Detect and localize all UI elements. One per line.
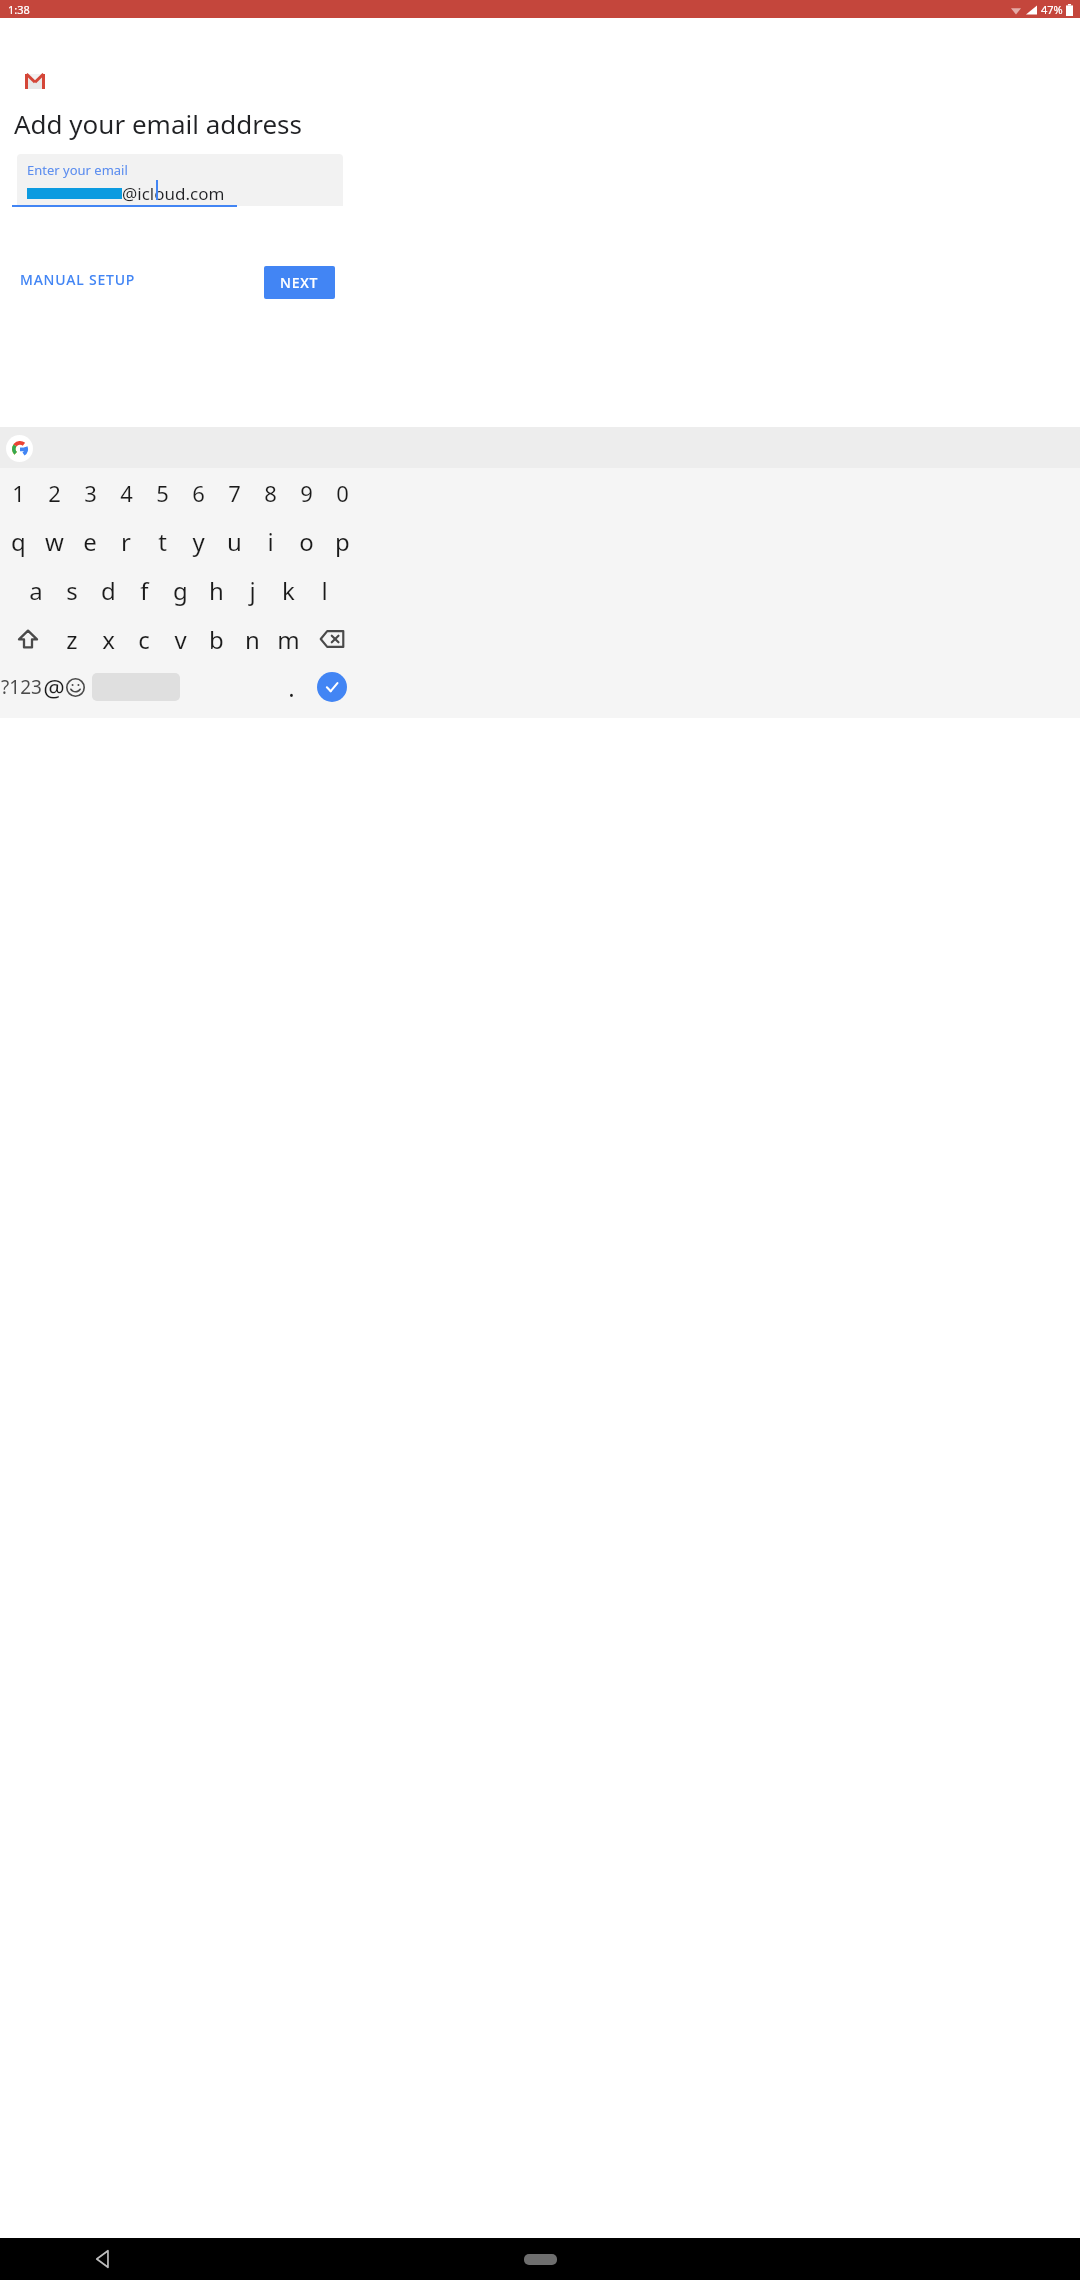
staticText: 3 bbox=[84, 478, 97, 508]
button[interactable]: p bbox=[292, 481, 392, 601]
staticText: g bbox=[173, 574, 188, 607]
button[interactable]: q bbox=[0, 481, 68, 601]
button[interactable]: NEXT bbox=[264, 266, 335, 299]
staticText: h bbox=[209, 574, 224, 607]
staticText: 4 bbox=[120, 478, 133, 508]
staticText: f bbox=[140, 574, 149, 607]
staticText: l bbox=[321, 574, 328, 607]
button[interactable]: f bbox=[94, 530, 194, 650]
button[interactable]: z bbox=[22, 579, 122, 699]
button[interactable]: a bbox=[0, 530, 86, 650]
staticText: i bbox=[267, 525, 274, 558]
button[interactable]: e bbox=[40, 481, 140, 601]
staticText: r bbox=[121, 525, 131, 558]
staticText: 6 bbox=[192, 478, 205, 508]
button[interactable]: r bbox=[76, 481, 176, 601]
button[interactable]: t bbox=[112, 481, 212, 601]
staticText: 1 bbox=[12, 478, 25, 508]
staticText: 8 bbox=[264, 478, 277, 508]
button[interactable]: Home bbox=[520, 2241, 560, 2277]
button[interactable]: u bbox=[184, 481, 284, 601]
button[interactable]: k bbox=[238, 530, 338, 650]
button[interactable]: s bbox=[22, 530, 122, 650]
staticText: c bbox=[138, 623, 150, 656]
staticText: z bbox=[66, 623, 78, 656]
button[interactable]: 7 bbox=[184, 433, 284, 553]
staticText: @icloud.com bbox=[122, 182, 225, 205]
staticText: 0 bbox=[336, 478, 349, 508]
button[interactable]: 6 bbox=[148, 433, 248, 553]
button[interactable]: i bbox=[220, 481, 320, 601]
staticText: q bbox=[11, 525, 26, 558]
staticText: o bbox=[299, 525, 314, 558]
staticText: x bbox=[102, 623, 115, 656]
button[interactable]: n bbox=[202, 579, 302, 699]
button[interactable]: 8 bbox=[220, 433, 320, 553]
button[interactable]: o bbox=[256, 481, 356, 601]
staticText: MANUAL SETUP bbox=[20, 270, 136, 289]
button[interactable]: Shift bbox=[10, 619, 46, 659]
button[interactable]: @ bbox=[4, 627, 104, 747]
button[interactable]: b bbox=[166, 579, 266, 699]
button[interactable]: v bbox=[130, 579, 230, 699]
staticText: u bbox=[227, 525, 242, 558]
button[interactable]: 3 bbox=[40, 433, 140, 553]
button[interactable]: l bbox=[274, 530, 374, 650]
button[interactable]: . bbox=[241, 627, 341, 747]
button[interactable]: MANUAL SETUP bbox=[20, 270, 136, 289]
staticText: @ bbox=[43, 671, 65, 704]
button[interactable]: 1 bbox=[0, 433, 68, 553]
button[interactable]: Google bbox=[6, 435, 33, 462]
button[interactable]: Backspace bbox=[312, 619, 352, 659]
button[interactable]: g bbox=[130, 530, 230, 650]
button[interactable]: Symbols bbox=[0, 627, 71, 747]
button[interactable]: c bbox=[94, 579, 194, 699]
button[interactable]: 2 bbox=[4, 433, 104, 553]
staticText: s bbox=[66, 574, 78, 607]
staticText: y bbox=[192, 525, 205, 558]
staticText: d bbox=[101, 574, 116, 607]
staticText: e bbox=[83, 525, 97, 558]
button[interactable]: y bbox=[148, 481, 248, 601]
staticText: b bbox=[209, 623, 224, 656]
staticText: Enter your email bbox=[27, 161, 128, 179]
button[interactable]: Emoji bbox=[57, 669, 93, 705]
staticText: t bbox=[158, 525, 167, 558]
button[interactable]: Back bbox=[84, 2241, 120, 2277]
button[interactable]: h bbox=[166, 530, 266, 650]
button[interactable]: w bbox=[4, 481, 104, 601]
button[interactable]: Enter your email bbox=[17, 154, 343, 206]
staticText: 9 bbox=[300, 478, 313, 508]
staticText: 1:38 bbox=[8, 2, 30, 17]
staticText: 5 bbox=[156, 478, 169, 508]
button[interactable]: x bbox=[58, 579, 158, 699]
button[interactable]: Done bbox=[317, 672, 347, 702]
staticText: 47% bbox=[1041, 2, 1063, 17]
staticText: Add your email address bbox=[14, 106, 303, 141]
staticText: . bbox=[288, 671, 295, 704]
button[interactable]: d bbox=[58, 530, 158, 650]
staticText: v bbox=[174, 623, 187, 656]
button[interactable]: 0 bbox=[292, 433, 392, 553]
staticText: n bbox=[245, 623, 260, 656]
staticText: 2 bbox=[48, 478, 61, 508]
button[interactable]: 9 bbox=[256, 433, 356, 553]
staticText: NEXT bbox=[280, 273, 319, 292]
staticText: k bbox=[282, 574, 295, 607]
staticText: j bbox=[249, 574, 256, 607]
button[interactable]: 4 bbox=[76, 433, 176, 553]
staticText: p bbox=[335, 525, 350, 558]
staticText: a bbox=[29, 574, 43, 607]
staticText: 7 bbox=[228, 478, 241, 508]
button[interactable]: 5 bbox=[112, 433, 212, 553]
button[interactable]: m bbox=[238, 579, 338, 699]
staticText: m bbox=[277, 623, 300, 656]
staticText: w bbox=[45, 525, 64, 558]
button[interactable]: j bbox=[202, 530, 302, 650]
staticText: ?123 bbox=[1, 674, 42, 700]
